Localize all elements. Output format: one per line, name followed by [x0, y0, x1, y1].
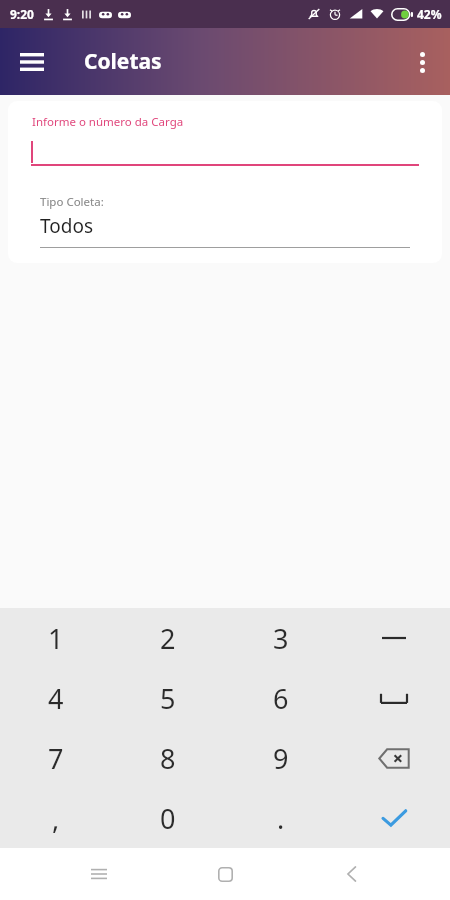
button[interactable]: Recent apps	[71, 848, 127, 900]
button[interactable]: Minus	[337, 608, 450, 668]
staticText: 3	[273, 620, 289, 657]
staticText: Todos	[40, 213, 94, 239]
button[interactable]: Back	[324, 848, 380, 900]
button[interactable]: .	[224, 788, 337, 848]
staticText: 6	[273, 680, 289, 717]
button[interactable]: 9	[224, 728, 337, 788]
button[interactable]: 8	[112, 728, 224, 788]
button[interactable]: 0	[112, 788, 224, 848]
button[interactable]: More options	[398, 38, 446, 86]
button[interactable]: 6	[224, 668, 337, 728]
staticText: 0	[160, 800, 176, 837]
staticText: 5	[160, 680, 176, 717]
staticText: 2	[160, 620, 176, 657]
button[interactable]: Space	[337, 668, 450, 728]
button[interactable]: 3	[224, 608, 337, 668]
staticText: Informe o número da Carga	[32, 114, 184, 130]
staticText: 9	[273, 740, 289, 777]
staticText: .	[277, 800, 285, 837]
button[interactable]: 2	[112, 608, 224, 668]
button[interactable]: ,	[0, 788, 112, 848]
button[interactable]: 4	[0, 668, 112, 728]
button[interactable]: Tipo Coleta:	[8, 194, 442, 256]
staticText: Coletas	[84, 47, 162, 76]
button[interactable]: Done	[337, 788, 450, 848]
staticText: 1	[48, 620, 64, 657]
button[interactable]: 5	[112, 668, 224, 728]
button[interactable]: Informe o número da Carga	[8, 114, 442, 176]
staticText: 8	[160, 740, 176, 777]
staticText: 7	[48, 740, 64, 777]
staticText: ,	[52, 800, 60, 837]
staticText: 9:20	[10, 6, 34, 22]
staticText: 42%	[417, 6, 442, 22]
button[interactable]: Home	[197, 848, 253, 900]
button[interactable]: Open navigation menu	[8, 38, 56, 86]
button[interactable]: Backspace	[337, 728, 450, 788]
button[interactable]: 1	[0, 608, 112, 668]
button[interactable]: 7	[0, 728, 112, 788]
staticText: Tipo Coleta:	[40, 194, 104, 210]
staticText: 4	[48, 680, 64, 717]
